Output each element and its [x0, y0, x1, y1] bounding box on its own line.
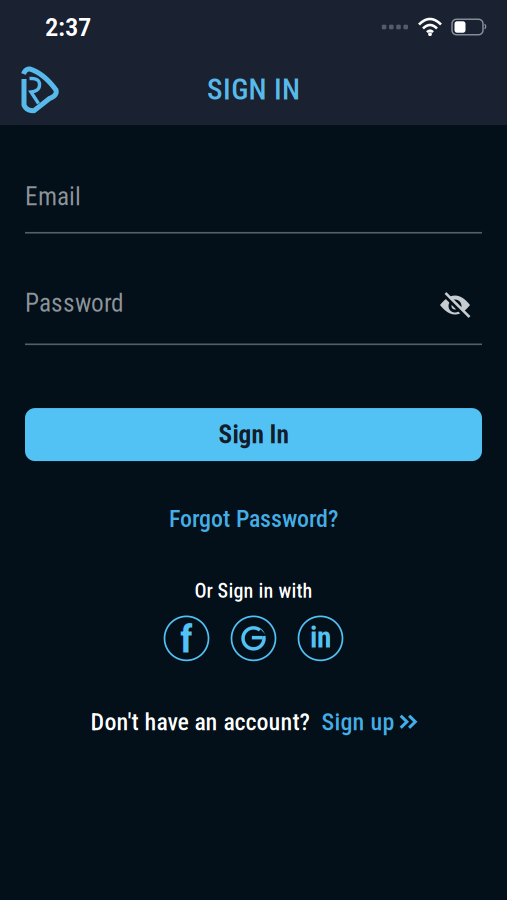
- staticText: Don't have an account?: [90, 708, 309, 736]
- staticText: Password: [25, 288, 124, 317]
- staticText: Sign In: [218, 420, 288, 449]
- button[interactable]: Show password: [440, 290, 482, 316]
- button[interactable]: Forgot Password?: [169, 505, 338, 532]
- button[interactable]: Sign in with LinkedIn: [298, 616, 342, 660]
- staticText: Email: [25, 182, 81, 211]
- button[interactable]: Sign In: [25, 408, 482, 461]
- button[interactable]: Sign in with Facebook: [164, 616, 208, 660]
- staticText: SIGN IN: [207, 73, 300, 106]
- button[interactable]: Sign in with Google: [231, 616, 275, 660]
- staticText: f: [180, 617, 193, 661]
- button[interactable]: Sign up: [321, 708, 416, 736]
- staticText: Sign up: [321, 708, 394, 736]
- staticText: Or Sign in with: [194, 579, 312, 602]
- staticText: in: [310, 621, 331, 654]
- staticText: Forgot Password?: [169, 505, 338, 532]
- staticText: 2:37: [45, 12, 91, 42]
